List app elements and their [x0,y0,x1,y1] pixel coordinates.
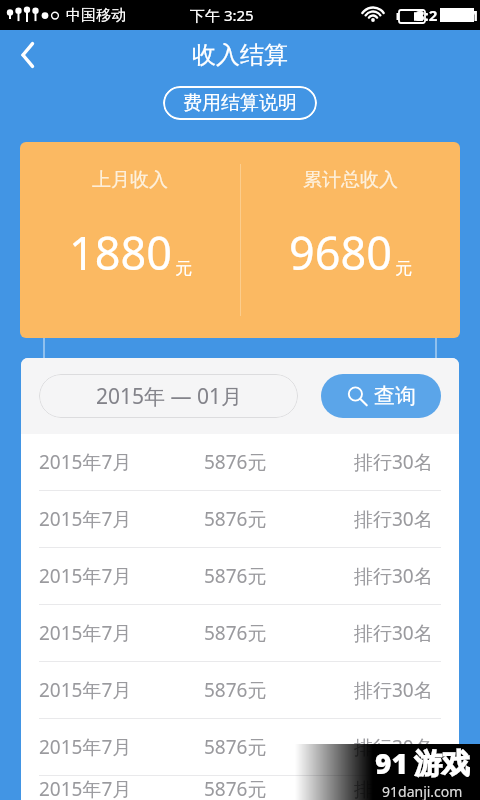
staticText: 2015年7月 [39,449,204,475]
button[interactable]: 2015年7月 [21,662,459,719]
staticText: 排行30名 [354,563,433,589]
staticText: 累计总收入 [303,168,398,192]
staticText: 上月收入 [92,168,168,192]
staticText: 5876元 [204,506,354,532]
button[interactable]: 2015年7月 [21,605,459,662]
button[interactable]: 费用结算说明 [163,86,317,120]
staticText: M [464,5,479,25]
staticText: 查询 [374,383,416,409]
staticText: 中国移动 [66,6,126,25]
staticText: 91 [375,744,408,782]
staticText: 9680 [289,222,392,283]
staticText: 91danji.com [382,782,463,800]
button[interactable]: 2015年7月 [21,434,459,491]
staticText: 排行30名 [354,734,433,760]
staticText: 元 [395,258,412,279]
button[interactable]: Back [0,30,56,80]
staticText: 5876元 [204,563,354,589]
staticText: 5876元 [204,677,354,703]
staticText: 排行30名 [354,776,433,800]
staticText: 费用结算说明 [183,91,297,115]
staticText: 5876元 [204,449,354,475]
staticText: 下午 3:25 [190,5,254,25]
staticText: 排行30名 [354,449,433,475]
button[interactable]: 2015年7月 [21,719,459,776]
staticText: 排行30名 [354,677,433,703]
staticText: 2015年7月 [39,677,204,703]
staticText: 2015年7月 [39,776,204,800]
staticText: 2015年7月 [39,620,204,646]
staticText: 排行30名 [354,620,433,646]
staticText: 5876元 [204,620,354,646]
button[interactable]: 2015年7月 [21,776,459,800]
button[interactable]: 2015年7月 [21,548,459,605]
staticText: 2015年 — 01月 [96,382,242,411]
staticText: 5876元 [204,776,354,800]
button[interactable]: 2015年 — 01月 [39,374,298,418]
staticText: 5876元 [204,734,354,760]
staticText: 2015年7月 [39,506,204,532]
button[interactable]: 查询 [321,374,441,418]
staticText: 游戏 [414,746,470,781]
staticText: 元 [175,258,192,279]
staticText: 2015年7月 [39,734,204,760]
staticText: 收入结算 [192,40,288,70]
staticText: 1880 [69,222,172,283]
staticText: 3:2 [416,5,438,25]
button[interactable]: 2015年7月 [21,491,459,548]
staticText: 排行30名 [354,506,433,532]
staticText: 2015年7月 [39,563,204,589]
